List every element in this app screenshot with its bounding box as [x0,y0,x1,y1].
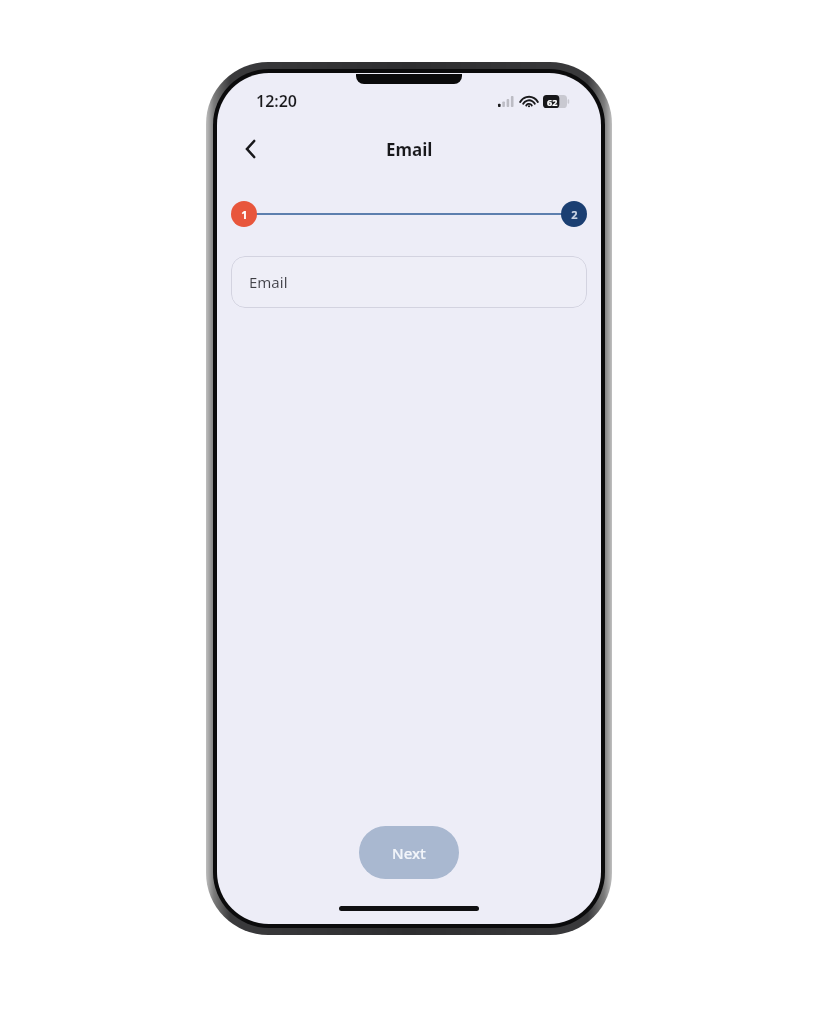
button[interactable]: 1 [231,201,257,227]
staticText: 62 [547,96,558,108]
button[interactable]: 2 [561,201,587,227]
staticText: Next [392,843,426,863]
button[interactable]: Email [231,256,587,308]
button[interactable]: Back [229,127,273,171]
staticText: Email [386,138,433,161]
staticText: 12:20 [256,90,298,112]
staticText: 2 [571,207,578,222]
button[interactable]: Next [359,826,459,879]
staticText: Email [249,272,288,292]
staticText: 1 [241,207,248,222]
